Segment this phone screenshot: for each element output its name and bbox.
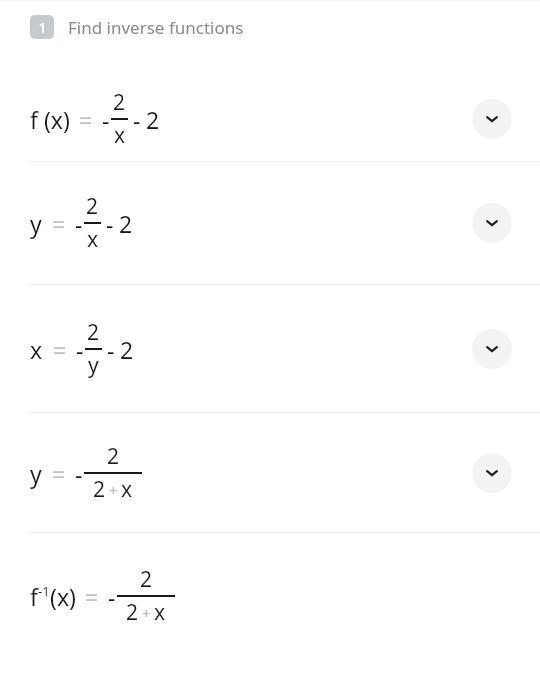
button[interactable]: 1 bbox=[30, 15, 540, 39]
staticText: = bbox=[85, 581, 99, 612]
staticText: - bbox=[75, 458, 83, 489]
staticText: x bbox=[114, 121, 126, 150]
staticText: -1 bbox=[38, 582, 50, 600]
staticText: - bbox=[107, 334, 115, 365]
staticText: = bbox=[52, 458, 66, 489]
staticText: 1 bbox=[38, 18, 47, 37]
staticText: 2 bbox=[87, 318, 100, 347]
staticText: - bbox=[102, 104, 110, 135]
staticText: 2 bbox=[120, 334, 134, 365]
staticText: - bbox=[76, 334, 84, 365]
staticText: - bbox=[133, 104, 141, 135]
staticText: y bbox=[30, 458, 42, 489]
staticText: 2 bbox=[146, 104, 160, 135]
staticText: 2 bbox=[107, 442, 120, 471]
button[interactable]: Expand step bbox=[472, 203, 512, 243]
button[interactable]: Expand step bbox=[472, 453, 512, 493]
button[interactable]: f bbox=[0, 533, 540, 658]
staticText: y bbox=[88, 351, 99, 380]
staticText: x bbox=[30, 334, 43, 365]
staticText: f (x) bbox=[30, 104, 70, 135]
staticText: x bbox=[121, 475, 133, 504]
staticText: + bbox=[109, 480, 118, 500]
staticText: (x) bbox=[50, 581, 76, 612]
staticText: Find inverse functions bbox=[68, 16, 244, 39]
staticText: = bbox=[53, 334, 67, 365]
staticText: - bbox=[75, 208, 83, 239]
staticText: 2 bbox=[93, 475, 106, 504]
button[interactable]: x bbox=[0, 285, 540, 412]
staticText: f bbox=[30, 581, 38, 612]
staticText: = bbox=[52, 208, 66, 239]
staticText: 2 bbox=[86, 192, 99, 221]
staticText: 2 bbox=[140, 565, 153, 594]
staticText: y bbox=[30, 208, 42, 239]
staticText: 2 bbox=[126, 598, 139, 627]
staticText: - bbox=[108, 581, 116, 612]
button[interactable]: y bbox=[0, 413, 540, 532]
staticText: x bbox=[87, 225, 99, 254]
staticText: - bbox=[106, 208, 114, 239]
staticText: + bbox=[142, 603, 151, 623]
button[interactable]: f (x) bbox=[0, 76, 540, 161]
button[interactable]: Expand step bbox=[472, 329, 512, 369]
button[interactable]: y bbox=[0, 162, 540, 284]
staticText: 2 bbox=[119, 208, 133, 239]
staticText: 2 bbox=[113, 88, 126, 117]
staticText: = bbox=[79, 104, 93, 135]
staticText: x bbox=[154, 598, 166, 627]
button[interactable]: Expand step bbox=[472, 99, 512, 139]
